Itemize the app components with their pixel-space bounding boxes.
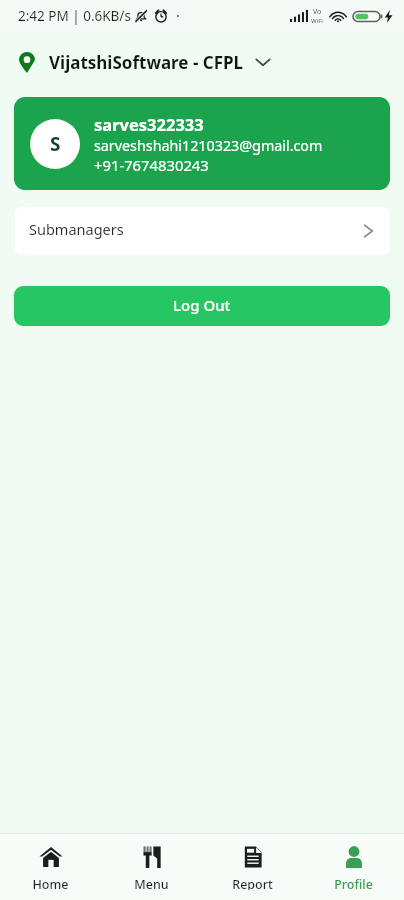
staticText: Submanagers	[29, 219, 124, 239]
button[interactable]: Home	[0, 834, 101, 900]
staticText: Profile	[334, 876, 373, 890]
staticText: Report	[232, 876, 273, 890]
staticText: Vo	[313, 7, 322, 17]
button[interactable]: Submanagers	[15, 207, 390, 255]
button[interactable]: Report	[202, 834, 303, 900]
staticText: VijatshiSoftware - CFPL	[49, 51, 244, 74]
staticText: sarves322333	[94, 113, 204, 135]
staticText: Menu	[134, 876, 169, 890]
button[interactable]: Menu	[101, 834, 202, 900]
button[interactable]: Profile	[303, 834, 404, 900]
staticText: +91-7674830243	[94, 155, 209, 175]
button[interactable]: Log Out	[14, 286, 390, 326]
staticText: 2:42 PM | 0.6KB/s	[18, 7, 131, 25]
button[interactable]: VijatshiSoftware - CFPL	[0, 31, 404, 93]
staticText: WiFi	[311, 17, 323, 25]
staticText: sarveshshahi1210323@gmail.com	[94, 136, 323, 155]
staticText: S	[50, 131, 61, 157]
staticText: Home	[32, 876, 69, 890]
staticText: Log Out	[173, 295, 231, 315]
button[interactable]: S	[14, 97, 390, 190]
